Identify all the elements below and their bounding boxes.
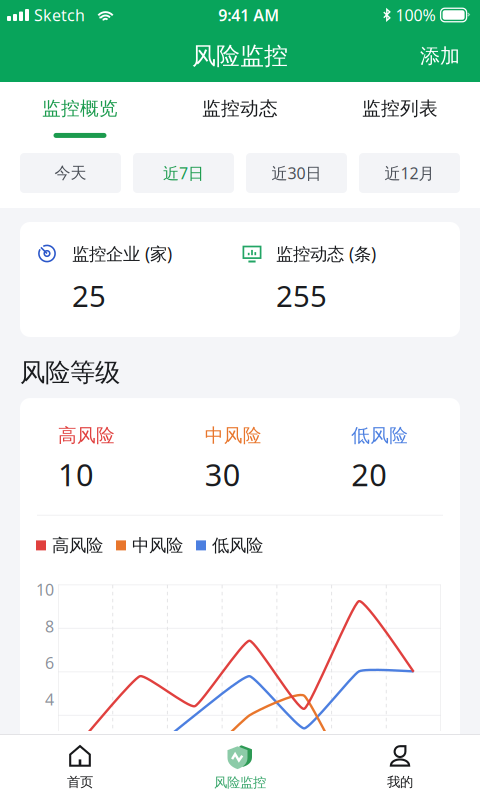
staticText: 我的: [387, 774, 413, 790]
staticText: 25: [72, 276, 106, 315]
staticText: 6: [45, 652, 54, 673]
staticText: 中风险: [132, 535, 183, 556]
button[interactable]: 监控列表: [320, 82, 480, 139]
staticText: 监控列表: [362, 97, 438, 120]
staticText: 低风险: [351, 424, 408, 447]
staticText: 风险等级: [20, 357, 120, 388]
staticText: 监控动态: [202, 97, 278, 120]
staticText: Sketch: [34, 4, 85, 26]
staticText: 255: [276, 276, 327, 315]
staticText: 近12月: [384, 162, 434, 184]
staticText: 近30日: [271, 162, 321, 184]
staticText: 近7日: [163, 162, 204, 184]
staticText: 低风险: [212, 535, 263, 556]
staticText: 8: [45, 616, 54, 637]
button[interactable]: 添加: [400, 33, 480, 79]
staticText: 风险监控: [214, 774, 266, 791]
staticText: 风险监控: [192, 41, 288, 71]
button[interactable]: 今天: [20, 153, 121, 193]
button[interactable]: 近12月: [359, 153, 460, 193]
button[interactable]: 我的: [320, 735, 480, 800]
staticText: 高风险: [58, 424, 115, 447]
staticText: 高风险: [52, 535, 103, 556]
button[interactable]: 近30日: [246, 153, 347, 193]
staticText: 10: [36, 579, 54, 600]
button[interactable]: 风险监控: [160, 735, 320, 800]
staticText: 中风险: [205, 424, 262, 447]
button[interactable]: 监控概览: [0, 82, 160, 139]
staticText: 100%: [396, 4, 436, 26]
staticText: 监控企业 (家): [72, 242, 172, 265]
staticText: 监控概览: [42, 97, 118, 120]
staticText: 20: [351, 454, 387, 495]
staticText: 添加: [420, 44, 460, 68]
button[interactable]: 监控动态: [160, 82, 320, 139]
staticText: 今天: [54, 163, 86, 183]
staticText: 4: [45, 689, 54, 710]
button[interactable]: 首页: [0, 735, 160, 800]
staticText: 10: [58, 454, 94, 495]
button[interactable]: 近7日: [133, 153, 234, 193]
staticText: 9:41 AM: [218, 4, 279, 26]
staticText: 首页: [67, 774, 93, 790]
staticText: 监控动态 (条): [276, 242, 376, 265]
staticText: 30: [205, 454, 241, 495]
